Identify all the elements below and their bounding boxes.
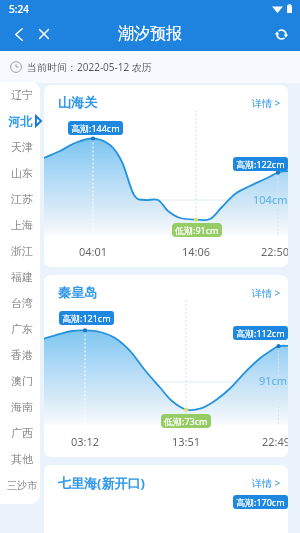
staticText: 高潮:144cm [71, 122, 120, 134]
staticText: 5:24 [9, 2, 29, 16]
staticText: 广西 [11, 426, 33, 440]
staticText: 山东 [11, 166, 33, 180]
button[interactable]: 辽宁 [0, 82, 44, 108]
button[interactable]: 浙江 [0, 238, 44, 264]
staticText: 高潮:122cm [236, 158, 285, 170]
button[interactable]: Back [6, 21, 32, 47]
staticText: 浙江 [11, 244, 33, 258]
staticText: 其他 [11, 452, 33, 466]
button[interactable]: 山东 [0, 160, 44, 186]
staticText: 高潮:112cm [236, 327, 285, 339]
staticText: 22:49 [256, 434, 288, 448]
staticText: 香港 [11, 348, 33, 362]
staticText: 详情 > [252, 286, 281, 300]
button[interactable]: 秦皇岛 [44, 275, 288, 457]
button[interactable]: 三沙市 [0, 472, 44, 498]
button[interactable]: 七里海(新开口) [44, 465, 288, 533]
staticText: 高潮:121cm [62, 312, 111, 324]
staticText: 广东 [11, 322, 33, 336]
staticText: 澳门 [11, 374, 33, 388]
button[interactable]: 台湾 [0, 290, 44, 316]
button[interactable]: 其他 [0, 446, 44, 472]
staticText: 91cm [259, 373, 288, 388]
staticText: 秦皇岛 [58, 284, 97, 300]
staticText: 22:50 [255, 244, 288, 258]
staticText: 当前时间：2022-05-12 农历 [27, 60, 152, 74]
button[interactable]: 江苏 [0, 186, 44, 212]
button[interactable]: 福建 [0, 264, 44, 290]
staticText: 低潮:91cm [175, 224, 219, 236]
staticText: 详情 > [252, 96, 281, 110]
staticText: 104cm [253, 192, 288, 207]
button[interactable]: Close [31, 21, 57, 47]
button[interactable]: 香港 [0, 342, 44, 368]
button[interactable]: 广东 [0, 316, 44, 342]
staticText: 山海关 [58, 94, 97, 110]
staticText: 低潮:73cm [164, 415, 208, 427]
staticText: 上海 [11, 218, 33, 232]
staticText: 福建 [11, 270, 33, 284]
staticText: 13:51 [166, 434, 206, 448]
staticText: 03:12 [65, 434, 105, 448]
staticText: 天津 [11, 140, 33, 154]
staticText: 14:06 [176, 244, 216, 258]
button[interactable]: 澳门 [0, 368, 44, 394]
staticText: 详情 > [252, 476, 281, 490]
staticText: 台湾 [11, 296, 33, 310]
staticText: 潮汐预报 [118, 24, 182, 44]
staticText: 河北 [8, 114, 32, 129]
staticText: 辽宁 [11, 88, 33, 102]
button[interactable]: 上海 [0, 212, 44, 238]
button[interactable]: 广西 [0, 420, 44, 446]
button[interactable]: 山海关 [44, 85, 288, 267]
button[interactable]: 天津 [0, 134, 44, 160]
staticText: 海南 [11, 400, 33, 414]
staticText: 七里海(新开口) [58, 474, 145, 492]
staticText: 江苏 [11, 192, 33, 206]
staticText: 三沙市 [7, 479, 37, 492]
button[interactable]: 河北 [0, 108, 44, 134]
button[interactable]: 海南 [0, 394, 44, 420]
staticText: 04:01 [73, 244, 113, 258]
staticText: 高潮:170cm [236, 496, 285, 508]
button[interactable]: Refresh [268, 21, 294, 47]
